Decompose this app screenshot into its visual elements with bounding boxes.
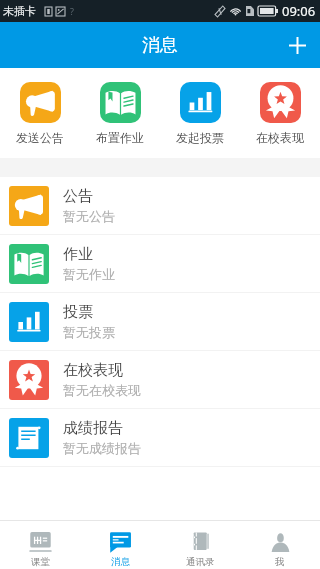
staticText: 公告 (63, 187, 93, 206)
staticText: 暂无投票 (63, 324, 115, 340)
button[interactable]: 我 (240, 521, 320, 569)
staticText: 09:06 (282, 2, 316, 20)
staticText: 在校表现 (63, 361, 123, 380)
staticText: 暂无成绩报告 (63, 440, 141, 456)
staticText: 成绩报告 (63, 419, 123, 438)
button[interactable]: 消息 (80, 521, 160, 569)
button[interactable]: 投票 (0, 293, 320, 350)
staticText: 投票 (63, 303, 93, 322)
staticText: 暂无公告 (63, 208, 115, 224)
button[interactable]: 作业 (0, 235, 320, 292)
staticText: 通讯录 (186, 556, 215, 568)
button[interactable]: 在校表现 (240, 68, 320, 158)
button[interactable]: Add (274, 22, 320, 68)
staticText: 课堂 (31, 556, 50, 568)
button[interactable]: 成绩报告 (0, 409, 320, 466)
staticText: 布置作业 (96, 130, 144, 145)
staticText: ? (70, 5, 74, 17)
staticText: 暂无在校表现 (63, 382, 141, 398)
staticText: 我 (275, 556, 285, 568)
button[interactable]: 布置作业 (80, 68, 160, 158)
staticText: 作业 (63, 245, 93, 264)
staticText: 发送公告 (16, 130, 64, 145)
button[interactable]: 发起投票 (160, 68, 240, 158)
button[interactable]: 通讯录 (160, 521, 240, 569)
staticText: 发起投票 (176, 130, 224, 145)
staticText: 暂无作业 (63, 266, 115, 282)
staticText: 消息 (142, 34, 178, 57)
button[interactable]: 课堂 (0, 521, 80, 569)
button[interactable]: 发送公告 (0, 68, 80, 158)
staticText: 未插卡 (3, 4, 36, 18)
staticText: 在校表现 (256, 130, 304, 145)
staticText: 消息 (111, 556, 130, 568)
button[interactable]: 在校表现 (0, 351, 320, 408)
button[interactable]: 公告 (0, 177, 320, 234)
